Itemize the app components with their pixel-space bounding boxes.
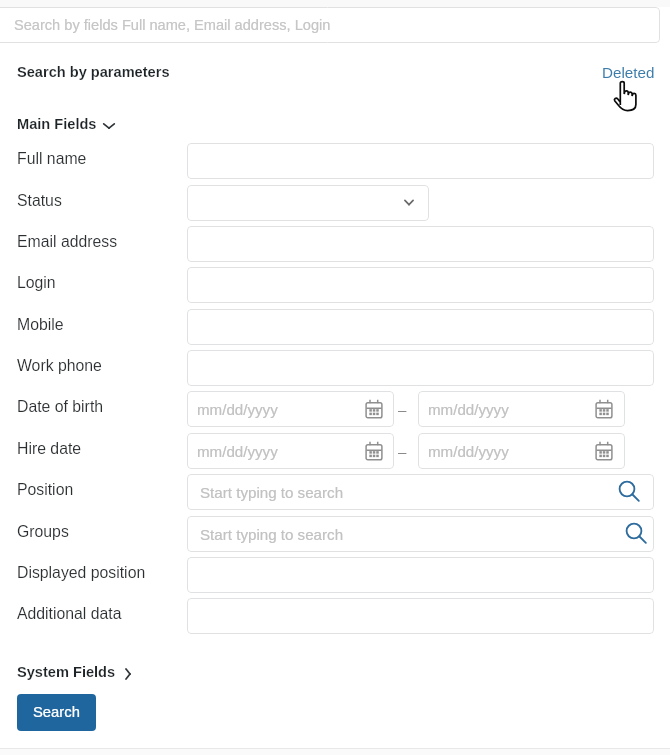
- staticText: Displayed position: [17, 564, 146, 582]
- button[interactable]: Pick date: [363, 398, 385, 420]
- button[interactable]: mm/dd/yyyy: [187, 391, 394, 427]
- staticText: System Fields: [17, 664, 116, 680]
- button[interactable]: [187, 309, 654, 345]
- button[interactable]: [187, 143, 654, 179]
- staticText: Main Fields: [17, 116, 97, 132]
- button[interactable]: [187, 350, 654, 386]
- button[interactable]: Start typing to search: [187, 516, 654, 552]
- staticText: Full name: [17, 150, 87, 168]
- staticText: Work phone: [17, 357, 102, 375]
- staticText: –: [398, 443, 407, 460]
- button[interactable]: Main Fields: [17, 116, 117, 132]
- button[interactable]: [187, 557, 654, 593]
- staticText: mm/dd/yyyy: [428, 401, 509, 418]
- staticText: Groups: [17, 523, 69, 541]
- staticText: Hire date: [17, 440, 82, 458]
- staticText: Date of birth: [17, 398, 104, 416]
- staticText: mm/dd/yyyy: [197, 401, 278, 418]
- staticText: mm/dd/yyyy: [428, 443, 509, 460]
- button[interactable]: Search: [17, 694, 96, 731]
- button[interactable]: Pick date: [363, 440, 385, 462]
- staticText: Status: [17, 192, 62, 210]
- button[interactable]: [187, 185, 429, 221]
- button[interactable]: System Fields: [17, 664, 136, 680]
- staticText: mm/dd/yyyy: [197, 443, 278, 460]
- staticText: Email address: [17, 233, 118, 251]
- button[interactable]: Search by fields Full name, Email addres…: [0, 7, 660, 43]
- button[interactable]: mm/dd/yyyy: [187, 433, 394, 469]
- staticText: Search by parameters: [17, 64, 170, 80]
- staticText: Start typing to search: [200, 484, 344, 501]
- button[interactable]: Search: [621, 518, 647, 544]
- button[interactable]: [187, 267, 654, 303]
- button[interactable]: Deleted: [596, 57, 661, 88]
- staticText: –: [398, 401, 407, 418]
- staticText: Deleted: [602, 64, 655, 81]
- staticText: Additional data: [17, 605, 122, 623]
- button[interactable]: Search: [614, 476, 640, 502]
- button[interactable]: [187, 598, 654, 634]
- button[interactable]: Pick date: [593, 440, 615, 462]
- staticText: Mobile: [17, 316, 64, 334]
- button[interactable]: mm/dd/yyyy: [418, 391, 625, 427]
- staticText: Start typing to search: [200, 526, 344, 543]
- button[interactable]: [187, 226, 654, 262]
- staticText: Login: [17, 274, 56, 292]
- button[interactable]: Start typing to search: [187, 474, 654, 510]
- button[interactable]: mm/dd/yyyy: [418, 433, 625, 469]
- staticText: Search by fields Full name, Email addres…: [14, 17, 331, 33]
- staticText: Position: [17, 481, 74, 499]
- staticText: Search: [33, 704, 80, 721]
- button[interactable]: Pick date: [593, 398, 615, 420]
